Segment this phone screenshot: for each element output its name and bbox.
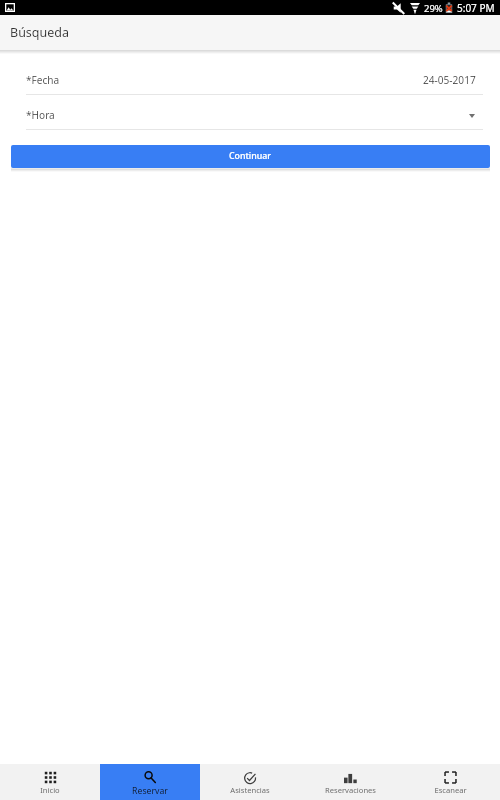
staticText: 5:07 PM	[457, 1, 495, 15]
staticText: Asistencias	[230, 785, 270, 795]
staticText: Continuar	[229, 150, 272, 162]
button[interactable]: *Hora	[26, 108, 483, 130]
staticText: Reservaciones	[325, 785, 376, 795]
staticText: Inicio	[40, 785, 60, 795]
button[interactable]: Inicio	[0, 764, 100, 800]
button[interactable]: Reservaciones	[300, 764, 400, 800]
button[interactable]: Continuar	[11, 145, 490, 168]
staticText: Búsqueda	[10, 24, 70, 41]
staticText: Reservar	[132, 785, 168, 797]
staticText: *Fecha	[26, 73, 60, 87]
button[interactable]: Reservar	[100, 764, 200, 800]
staticText: 24-05-2017	[423, 73, 476, 87]
button[interactable]: Asistencias	[200, 764, 300, 800]
button[interactable]: *Fecha	[26, 73, 483, 95]
button[interactable]: Escanear	[400, 764, 500, 800]
staticText: *Hora	[26, 108, 55, 122]
button[interactable]: Seleccionar hora	[465, 110, 479, 124]
staticText: Escanear	[434, 785, 467, 795]
staticText: 29%	[424, 2, 443, 15]
